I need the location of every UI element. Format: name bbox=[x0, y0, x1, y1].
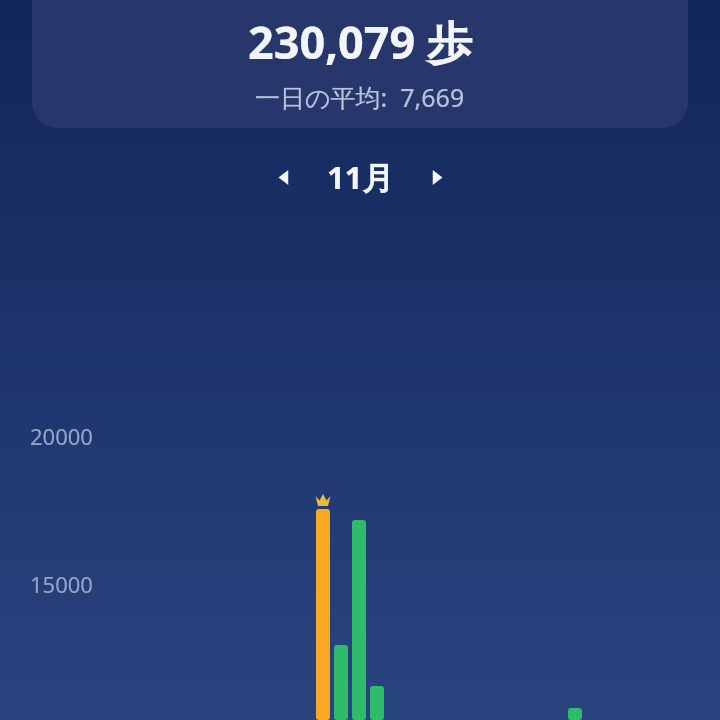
button[interactable]: 230,079 歩 bbox=[32, 0, 688, 128]
button[interactable]: 11月 bbox=[307, 154, 413, 200]
staticText: 一日の平均: 7,669 bbox=[255, 80, 465, 114]
staticText: 11月 bbox=[327, 156, 394, 198]
staticText: 230,079 歩 bbox=[248, 11, 472, 72]
staticText: 20000 bbox=[30, 421, 93, 451]
staticText: 15000 bbox=[30, 569, 93, 599]
button[interactable]: 前の月 bbox=[261, 154, 307, 200]
button[interactable]: 次の月 bbox=[413, 154, 459, 200]
